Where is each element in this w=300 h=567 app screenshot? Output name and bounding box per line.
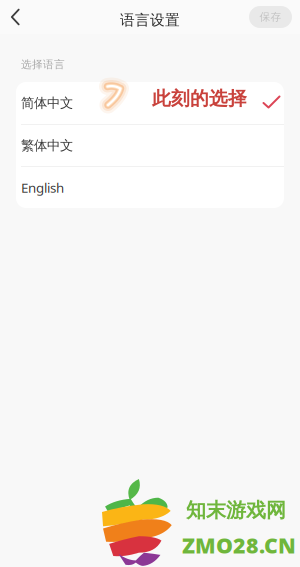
staticText: ZMO28.CN xyxy=(182,531,296,559)
button[interactable]: 繁体中文 xyxy=(16,125,284,166)
staticText: 选择语言 xyxy=(21,58,65,71)
staticText: 保存 xyxy=(259,10,281,23)
button[interactable]: English xyxy=(16,167,284,208)
button[interactable]: Back xyxy=(0,0,31,34)
button[interactable]: 保存 xyxy=(249,6,292,28)
button[interactable]: 简体中文 xyxy=(16,82,284,124)
staticText: English xyxy=(21,179,64,196)
staticText: 语言设置 xyxy=(120,11,180,29)
staticText: 知末游戏网 xyxy=(186,498,286,523)
staticText: 繁体中文 xyxy=(21,137,73,154)
staticText: 此刻的选择 xyxy=(152,87,247,110)
staticText: 简体中文 xyxy=(21,95,73,111)
